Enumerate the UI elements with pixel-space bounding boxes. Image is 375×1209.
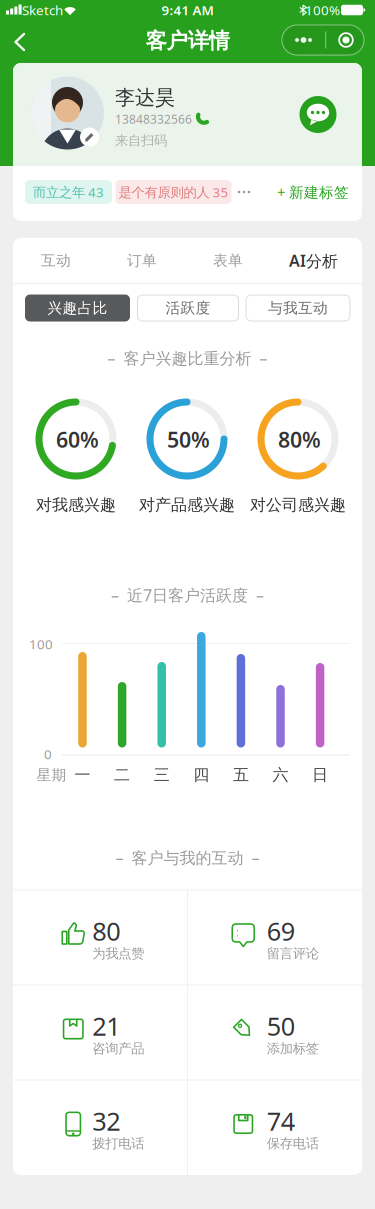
staticText: 日: [312, 765, 328, 785]
staticText: 50%: [167, 425, 210, 454]
staticText: 留言评论: [267, 945, 319, 962]
staticText: 订单: [127, 251, 157, 269]
staticText: Sketch: [22, 1, 63, 19]
button[interactable]: 是个有原则的人 35: [115, 180, 231, 204]
staticText: 互动: [41, 251, 71, 269]
staticText: 对产品感兴趣: [139, 495, 235, 515]
staticText: 100: [29, 635, 53, 653]
staticText: – 近7日客户活跃度 –: [111, 584, 264, 606]
staticText: 13848332566: [115, 111, 192, 127]
staticText: 74: [267, 1104, 295, 1138]
staticText: 六: [272, 765, 288, 785]
staticText: 而立之年 43: [33, 183, 104, 201]
button[interactable]: 74: [188, 1080, 362, 1175]
button[interactable]: 互动: [12, 238, 99, 283]
staticText: 咨询产品: [92, 1040, 144, 1057]
staticText: 表单: [213, 251, 243, 269]
staticText: 69: [267, 914, 295, 948]
staticText: 9:41 AM: [161, 1, 213, 19]
staticText: 对我感兴趣: [36, 495, 116, 515]
staticText: 80: [92, 914, 120, 948]
staticText: 兴趣占比: [47, 299, 107, 317]
staticText: – 客户兴趣比重分析 –: [107, 347, 267, 369]
button[interactable]: AI分析: [270, 238, 357, 283]
staticText: 为我点赞: [92, 945, 144, 962]
staticText: 活跃度: [165, 299, 210, 317]
staticText: 三: [154, 765, 170, 785]
staticText: 与我互动: [268, 299, 328, 317]
button[interactable]: 69: [188, 890, 362, 985]
staticText: AI分析: [289, 250, 338, 271]
staticText: 21: [92, 1009, 120, 1043]
button[interactable]: 表单: [184, 238, 271, 283]
button[interactable]: 80: [13, 890, 187, 985]
button[interactable]: 兴趣占比: [25, 294, 130, 321]
staticText: 四: [193, 765, 209, 785]
staticText: 二: [114, 765, 130, 785]
staticText: 拨打电话: [92, 1135, 144, 1152]
staticText: 50: [267, 1009, 295, 1043]
staticText: 80%: [278, 425, 321, 454]
staticText: 一: [74, 765, 90, 785]
staticText: + 新建标签: [277, 182, 349, 202]
button[interactable]: 返回: [0, 20, 44, 64]
button[interactable]: 拨打电话: [192, 107, 216, 131]
staticText: 32: [92, 1104, 120, 1138]
button[interactable]: 21: [13, 985, 187, 1080]
staticText: 是个有原则的人 35: [118, 183, 228, 201]
staticText: 李达昊: [115, 85, 175, 110]
button[interactable]: 与我互动: [245, 294, 350, 321]
staticText: 0: [44, 745, 52, 763]
button[interactable]: 活跃度: [137, 294, 239, 321]
button[interactable]: 50: [188, 985, 362, 1080]
staticText: 保存电话: [267, 1135, 319, 1152]
staticText: 60%: [56, 425, 99, 454]
button[interactable]: 而立之年 43: [25, 180, 112, 204]
staticText: – 客户与我的互动 –: [115, 847, 259, 868]
staticText: 来自扫码: [115, 132, 167, 149]
staticText: 对公司感兴趣: [250, 495, 346, 515]
button[interactable]: 编辑头像: [80, 127, 99, 146]
button[interactable]: 更多标签: [232, 179, 256, 205]
button[interactable]: 更多: [282, 24, 325, 56]
staticText: 客户详情: [145, 28, 229, 54]
staticText: 五: [233, 765, 249, 785]
button[interactable]: 32: [13, 1080, 187, 1175]
staticText: 星期: [36, 766, 66, 784]
button[interactable]: 关闭: [325, 24, 365, 56]
button[interactable]: 订单: [98, 238, 185, 283]
button[interactable]: 发消息: [299, 96, 336, 133]
button[interactable]: + 新建标签: [267, 178, 359, 206]
staticText: 添加标签: [267, 1040, 319, 1057]
staticText: 100%: [305, 1, 340, 19]
